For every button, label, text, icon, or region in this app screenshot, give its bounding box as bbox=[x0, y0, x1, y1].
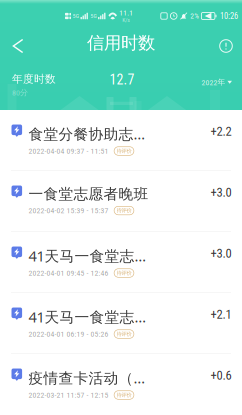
staticText: 41天马一食堂志… bbox=[29, 307, 147, 326]
button[interactable]: 41天马一食堂志… bbox=[0, 232, 242, 293]
staticText: 11.1 bbox=[119, 9, 133, 17]
staticText: 待评价 bbox=[116, 148, 131, 154]
staticText: 待评价 bbox=[116, 207, 131, 214]
staticText: 5G bbox=[90, 13, 96, 19]
staticText: 待评价 bbox=[116, 392, 131, 398]
staticText: +0.6 bbox=[210, 368, 231, 383]
staticText: K/s bbox=[122, 16, 130, 23]
staticText: 待评价 bbox=[116, 270, 131, 276]
button[interactable]: 食堂分餐协助志… bbox=[0, 110, 242, 171]
button[interactable]: 一食堂志愿者晚班 bbox=[0, 171, 242, 232]
staticText: +2.2 bbox=[210, 124, 231, 139]
staticText: 10:26 bbox=[220, 11, 238, 21]
staticText: 待评价 bbox=[116, 331, 131, 337]
staticText: 2022年 bbox=[201, 77, 225, 87]
staticText: 年度时数 bbox=[12, 72, 56, 85]
button[interactable]: 说明 bbox=[210, 26, 242, 60]
staticText: 2022-04-01 06:19 - 05:26 bbox=[29, 329, 109, 339]
staticText: +2.1 bbox=[210, 307, 231, 322]
staticText: 12.7 bbox=[109, 71, 134, 88]
staticText: 一食堂志愿者晚班 bbox=[29, 185, 149, 203]
button[interactable]: 41天马一食堂志… bbox=[0, 293, 242, 354]
staticText: 2022-04-01 09:45 - 12:46 bbox=[29, 268, 109, 278]
staticText: +3.0 bbox=[210, 185, 231, 200]
staticText: +3.0 bbox=[210, 246, 231, 261]
staticText: 信用时数 bbox=[87, 32, 155, 54]
button[interactable]: 疫情查卡活动（… bbox=[0, 354, 242, 415]
staticText: 41天马一食堂志… bbox=[29, 246, 147, 265]
button[interactable]: 2022年 bbox=[201, 77, 242, 87]
staticText: 2022-03-21 11:57 - 12:15 bbox=[29, 390, 109, 400]
button[interactable]: 返回 bbox=[0, 26, 36, 60]
staticText: 食堂分餐协助志… bbox=[29, 124, 146, 143]
staticText: 2% bbox=[190, 12, 199, 20]
staticText: 80分 bbox=[12, 87, 28, 98]
staticText: 疫情查卡活动（… bbox=[29, 368, 146, 387]
staticText: 2022-04-04 09:37 - 11:51 bbox=[29, 146, 109, 156]
staticText: 5G bbox=[73, 13, 79, 19]
staticText: 2022-04-02 15:39 - 15:37 bbox=[29, 206, 109, 215]
